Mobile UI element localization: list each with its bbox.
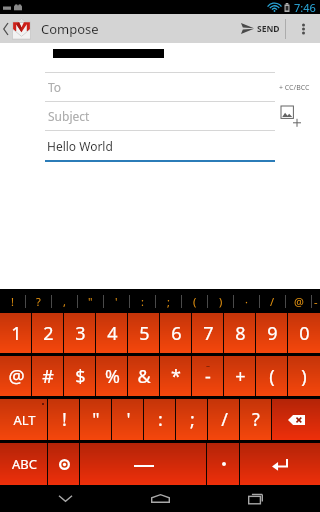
staticText: To [48,79,62,95]
button[interactable]: ) [208,289,233,313]
button[interactable]: 7 [192,313,224,353]
staticText: Subject [48,108,90,124]
button[interactable]: Delete [272,399,320,440]
staticText: ! [11,294,14,309]
staticText: / [221,407,228,432]
button[interactable]: Period [207,443,240,485]
button[interactable]: ; [156,289,181,313]
button[interactable]: * [160,356,192,396]
staticText: 5 [139,321,150,346]
staticText: ; [167,294,170,309]
button[interactable]: 1 [0,313,32,353]
button[interactable]: ; [176,399,208,440]
button[interactable]: " [80,399,112,440]
button[interactable]: Recent apps [225,485,285,512]
button[interactable]: ABC [0,443,48,485]
button[interactable]: ! [0,289,25,313]
staticText: ALT [13,411,36,429]
staticText: # [42,364,54,389]
staticText: @ [294,294,304,309]
button[interactable]: More options [286,14,320,43]
staticText: / [270,294,275,309]
staticText: ' [126,407,131,432]
button[interactable]: ' [104,289,129,313]
button[interactable]: Input options [48,443,80,485]
button[interactable]: Enter [240,443,320,485]
button[interactable]: , [52,289,77,313]
button[interactable]: Navigate up [0,14,33,43]
button[interactable]: ALT [0,399,48,440]
button[interactable]: + [224,356,256,396]
staticText: Compose [41,20,99,38]
button[interactable]: : [144,399,176,440]
staticText: ? [36,294,41,309]
button[interactable]: · [234,289,259,313]
button[interactable]: 6 [160,313,192,353]
staticText: : [141,294,144,309]
staticText: * [171,364,181,389]
staticText: ) [301,364,307,389]
button[interactable]: Hide keyboard [35,485,95,512]
button[interactable]: ) [288,356,320,396]
staticText: % [105,364,120,389]
staticText: ! [62,407,67,432]
button[interactable]: 2 [32,313,64,353]
button[interactable]: # [32,356,64,396]
button[interactable]: @ [0,356,32,396]
staticText: @ [8,364,25,389]
button[interactable]: SEND [229,14,285,43]
staticText: + [235,364,246,389]
button[interactable]: @ [286,289,311,313]
staticText: - [205,364,211,389]
staticText: 1 [11,321,22,346]
button[interactable]: ( [182,289,207,313]
staticText: 9 [267,321,278,346]
button[interactable]: 9 [256,313,288,353]
button[interactable]: " [78,289,103,313]
button[interactable]: Home [130,485,190,512]
button[interactable]: Space [80,443,207,485]
button[interactable]: $ [64,356,96,396]
button[interactable]: Hello World [45,131,275,160]
staticText: " [92,407,100,432]
button[interactable]: ' [112,399,144,440]
button[interactable]: - [312,289,320,313]
button[interactable]: 8 [224,313,256,353]
button[interactable]: 4 [96,313,128,353]
staticText: 4 [107,321,118,346]
button[interactable]: ! [48,399,80,440]
button[interactable]: - [192,356,224,396]
staticText: ( [193,294,197,309]
button[interactable]: 5 [128,313,160,353]
button[interactable]: 0 [288,313,320,353]
staticText: : [158,407,163,432]
button[interactable]: ( [256,356,288,396]
button[interactable]: ? [240,399,272,440]
button[interactable]: : [130,289,155,313]
button[interactable]: % [96,356,128,396]
staticText: SEND [257,23,280,35]
button[interactable]: + CC/BCC [276,80,313,96]
staticText: 0 [299,321,310,346]
staticText: & [137,364,151,389]
button[interactable]: Attach picture [281,106,301,126]
button[interactable]: / [260,289,285,313]
staticText: " [88,294,93,309]
button[interactable]: & [128,356,160,396]
staticText: 7 [203,321,214,346]
button[interactable]: Subject [45,102,275,130]
staticText: 3 [75,321,86,346]
staticText: , [63,294,66,309]
button[interactable]: / [208,399,240,440]
button[interactable]: 3 [64,313,96,353]
button[interactable]: To [45,73,275,101]
staticText: ABC [12,455,37,473]
staticText: ( [269,364,275,389]
staticText: 2 [43,321,54,346]
staticText: - [314,294,318,309]
staticText: 8 [235,321,246,346]
staticText: Hello World [47,138,113,154]
button[interactable]: ? [26,289,51,313]
staticText: · [245,294,248,309]
staticText: – [206,360,210,371]
